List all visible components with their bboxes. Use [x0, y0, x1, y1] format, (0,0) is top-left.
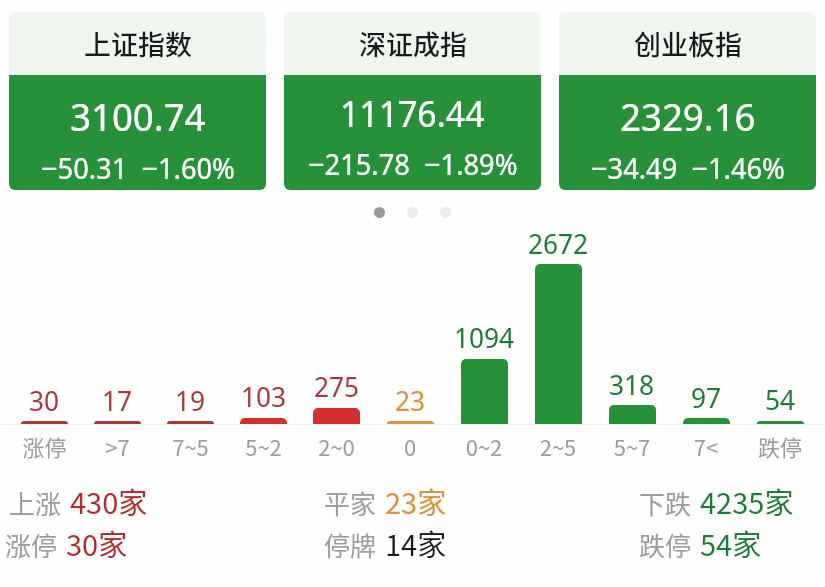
staticText: 14家 [385, 522, 447, 564]
staticText: 3100.74 [70, 89, 206, 142]
staticText: 318 [609, 365, 655, 403]
staticText: 19 [175, 381, 206, 419]
staticText: 平家 [324, 484, 377, 522]
staticText: 7~5 [154, 430, 227, 462]
staticText: 涨停 [5, 526, 58, 564]
button[interactable]: 下跌 [639, 480, 825, 522]
staticText: 23家 [385, 480, 447, 522]
staticText: 创业板指 [634, 24, 742, 63]
staticText: 2329.16 [620, 89, 756, 142]
button[interactable]: 停牌 [324, 522, 550, 564]
staticText: 下跌 [639, 484, 692, 522]
staticText: −50.31 −1.60% [41, 148, 235, 187]
button[interactable]: Page 1 [374, 207, 385, 218]
staticText: 5~7 [595, 430, 669, 462]
staticText: 54家 [700, 522, 762, 564]
button[interactable]: Page 2 [407, 207, 418, 218]
button[interactable]: Page 3 [440, 207, 451, 218]
staticText: 97 [691, 378, 722, 416]
staticText: 30 [29, 381, 60, 419]
staticText: 0~2 [447, 430, 521, 462]
button[interactable]: 深证成指 [284, 12, 541, 190]
staticText: 2~0 [300, 430, 373, 462]
staticText: 430家 [70, 480, 148, 522]
staticText: 17 [102, 381, 133, 419]
staticText: 0 [373, 430, 447, 462]
button[interactable]: 平家 [324, 480, 550, 522]
staticText: 11176.44 [340, 89, 485, 138]
button[interactable]: 上涨 [9, 480, 275, 522]
staticText: 54 [765, 380, 796, 418]
staticText: 2~5 [521, 430, 595, 462]
staticText: 上涨 [9, 484, 62, 522]
staticText: −215.78 −1.89% [308, 144, 518, 183]
staticText: 跌停 [639, 526, 692, 564]
staticText: 275 [314, 367, 360, 405]
staticText: 103 [241, 377, 287, 415]
button[interactable]: 涨停 [5, 522, 275, 564]
staticText: 2672 [528, 224, 589, 262]
staticText: >7 [81, 430, 154, 462]
button[interactable]: 上证指数 [9, 12, 266, 190]
staticText: 跌停 [743, 430, 817, 462]
staticText: 1094 [454, 318, 515, 356]
staticText: 涨停 [8, 430, 81, 462]
button[interactable]: 创业板指 [559, 12, 816, 190]
staticText: 7< [669, 430, 743, 462]
staticText: 停牌 [324, 526, 377, 564]
staticText: 4235家 [700, 480, 794, 522]
staticText: 深证成指 [359, 24, 467, 63]
staticText: 30家 [66, 522, 128, 564]
staticText: −34.49 −1.46% [591, 148, 785, 187]
staticText: 23 [395, 381, 426, 419]
button[interactable]: 跌停 [639, 522, 825, 564]
staticText: 上证指数 [84, 24, 192, 63]
staticText: 5~2 [227, 430, 300, 462]
